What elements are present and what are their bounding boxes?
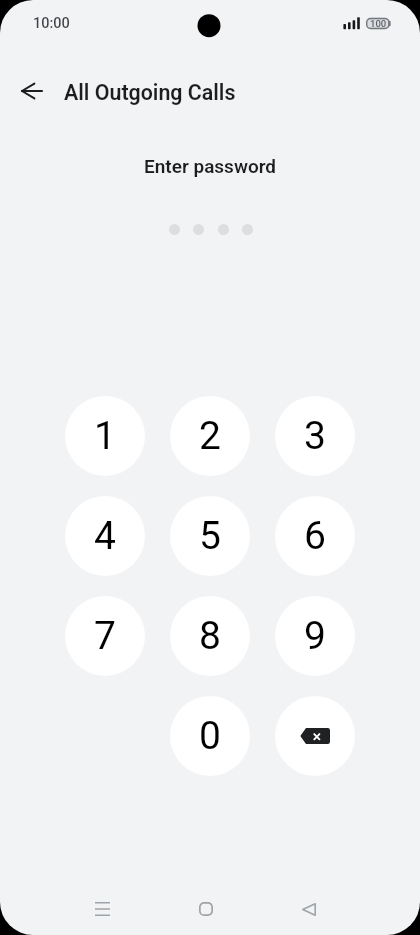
staticText: 100 (370, 18, 387, 29)
staticText: 5 (199, 513, 221, 559)
button[interactable]: Home (181, 885, 231, 933)
staticText: 8 (199, 613, 221, 659)
button[interactable]: 3 (275, 396, 355, 476)
button[interactable]: 5 (170, 496, 250, 576)
button[interactable]: 7 (65, 596, 145, 676)
staticText: 1 (94, 413, 116, 459)
button[interactable]: 8 (170, 596, 250, 676)
button[interactable]: 4 (65, 496, 145, 576)
staticText: 3 (304, 413, 326, 459)
button[interactable]: 2 (170, 396, 250, 476)
staticText: 7 (94, 613, 116, 659)
staticText: Enter password (0, 155, 420, 177)
button[interactable]: 6 (275, 496, 355, 576)
button[interactable]: 1 (65, 396, 145, 476)
button[interactable]: Back (284, 885, 334, 933)
staticText: 10:00 (33, 15, 70, 32)
staticText: 2 (199, 413, 221, 459)
staticText: All Outgoing Calls (64, 80, 236, 105)
button[interactable]: 0 (170, 696, 250, 776)
button[interactable]: Back (10, 69, 54, 113)
staticText: 6 (304, 513, 326, 559)
button[interactable]: Delete (275, 696, 355, 776)
button[interactable]: 9 (275, 596, 355, 676)
staticText: 9 (304, 613, 326, 659)
staticText: 0 (199, 713, 221, 759)
staticText: 4 (94, 513, 116, 559)
button[interactable]: Recent apps (77, 885, 127, 933)
